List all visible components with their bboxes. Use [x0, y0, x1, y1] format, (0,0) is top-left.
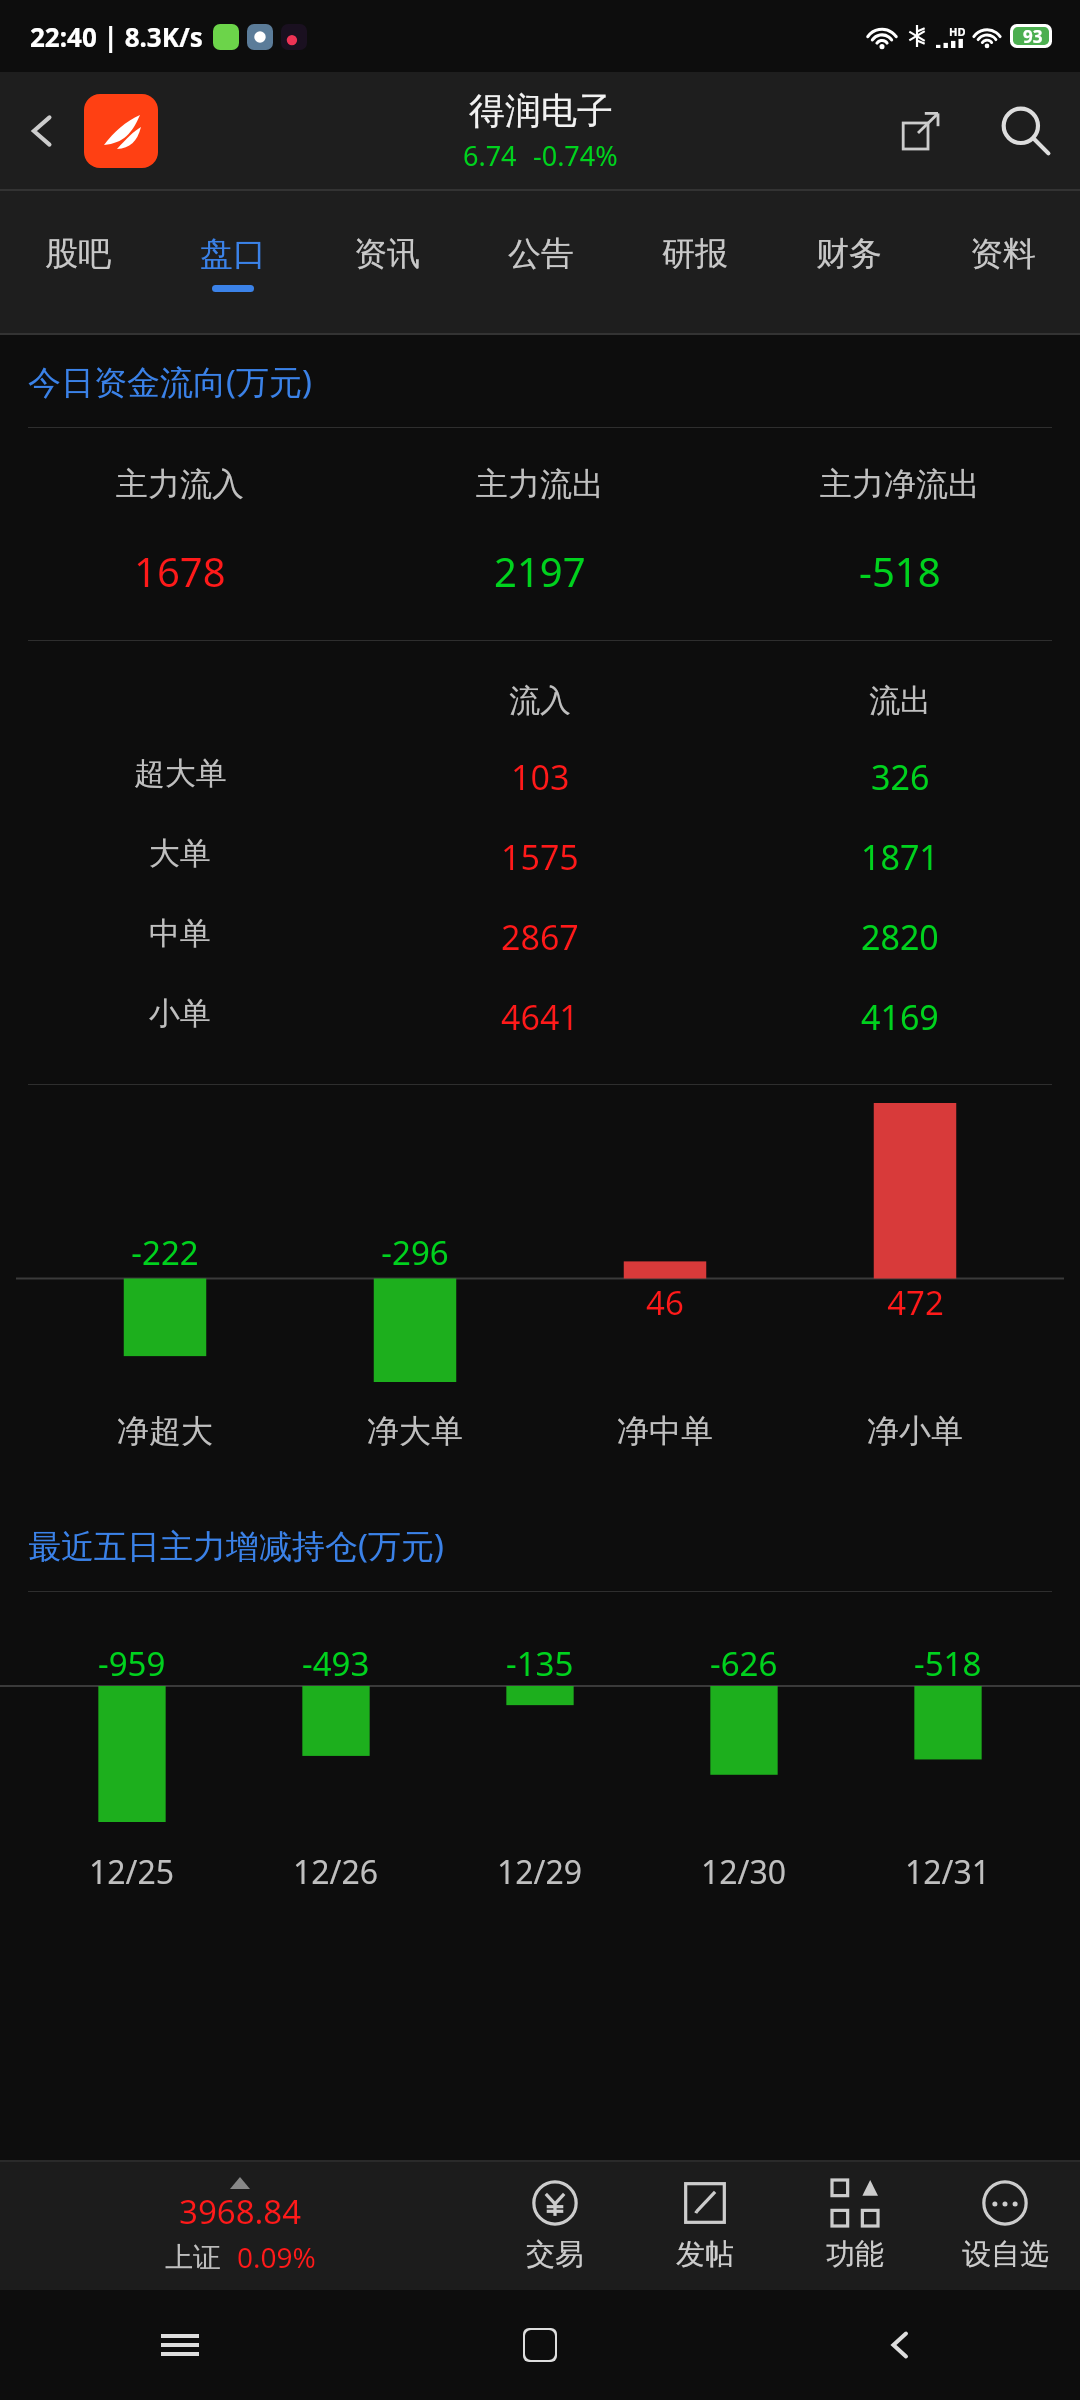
button[interactable]: 盘口	[155, 190, 310, 335]
staticText: 326	[871, 754, 930, 800]
button[interactable]: 研报	[618, 190, 772, 335]
staticText: 472	[887, 1280, 944, 1325]
button[interactable]: Share	[870, 81, 970, 181]
staticText: 超大单	[134, 754, 227, 793]
button[interactable]: 资料	[926, 190, 1080, 335]
staticText: 财务	[816, 233, 882, 275]
staticText: 公告	[508, 233, 574, 275]
staticText: 1575	[501, 834, 579, 880]
staticText: 功能	[826, 2236, 884, 2273]
staticText: 103	[511, 754, 570, 800]
staticText: -518	[859, 544, 941, 598]
staticText: -959	[98, 1641, 166, 1686]
staticText: 1678	[134, 544, 226, 598]
button[interactable]: 3968.84	[0, 2162, 480, 2290]
staticText: 资料	[970, 233, 1036, 275]
staticText: 得润电子	[469, 88, 613, 133]
button[interactable]: App logo	[84, 94, 158, 168]
staticText: 12/31	[905, 1850, 991, 1894]
staticText: 主力流入	[116, 464, 244, 504]
staticText: 最近五日主力增减持仓(万元)	[28, 1523, 444, 1568]
staticText: HD	[949, 24, 966, 39]
staticText: 1871	[861, 834, 939, 880]
button[interactable]: 财务	[772, 190, 926, 335]
staticText: 流入	[509, 681, 571, 720]
staticText: 净小单	[867, 1411, 963, 1451]
staticText: 主力流出	[476, 464, 604, 504]
staticText: 2867	[501, 914, 579, 960]
button[interactable]: 资讯	[310, 190, 464, 335]
staticText: 4169	[861, 994, 939, 1040]
staticText: 研报	[662, 233, 728, 275]
button[interactable]: 公告	[464, 190, 618, 335]
staticText: 净大单	[367, 1411, 463, 1451]
staticText: 12/30	[701, 1850, 787, 1894]
staticText: 12/29	[497, 1850, 583, 1894]
button[interactable]: Back	[720, 2290, 1080, 2400]
staticText: 6.74	[463, 137, 517, 174]
staticText: 设自选	[962, 2236, 1049, 2273]
button[interactable]: Search	[970, 76, 1080, 186]
staticText: 12/26	[293, 1850, 379, 1894]
staticText: 股吧	[45, 233, 111, 275]
staticText: 小单	[149, 994, 211, 1033]
staticText: 93	[1023, 25, 1043, 48]
button[interactable]: 交易	[480, 2162, 630, 2290]
button[interactable]: 设自选	[930, 2162, 1080, 2290]
button[interactable]: 功能	[780, 2162, 930, 2290]
staticText: 2197	[494, 544, 586, 598]
staticText: 46	[646, 1280, 684, 1325]
staticText: 主力净流出	[820, 464, 980, 504]
staticText: 0.09%	[237, 2238, 316, 2276]
staticText: 12/25	[89, 1850, 175, 1894]
staticText: -135	[506, 1641, 574, 1686]
staticText: 净超大	[117, 1411, 213, 1451]
staticText: 今日资金流向(万元)	[28, 359, 312, 404]
staticText: -493	[302, 1641, 370, 1686]
button[interactable]: Home	[360, 2290, 720, 2400]
staticText: 3968.84	[179, 2189, 302, 2234]
staticText: 交易	[526, 2236, 584, 2273]
staticText: -222	[131, 1230, 199, 1275]
button[interactable]: Back	[0, 89, 84, 173]
staticText: 资讯	[354, 233, 420, 275]
staticText: 发帖	[676, 2236, 734, 2273]
button[interactable]: 发帖	[630, 2162, 780, 2290]
staticText: -296	[381, 1230, 449, 1275]
staticText: 上证	[165, 2240, 221, 2275]
staticText: 净中单	[617, 1411, 713, 1451]
staticText: 大单	[149, 834, 211, 873]
staticText: 流出	[869, 681, 931, 720]
staticText: 盘口	[200, 233, 266, 275]
button[interactable]: 股吧	[0, 190, 155, 335]
staticText: 22:40 | 8.3K/s	[30, 19, 203, 54]
staticText: -0.74%	[533, 137, 618, 174]
staticText: -626	[710, 1641, 778, 1686]
button[interactable]: Recents	[0, 2290, 360, 2400]
staticText: 2820	[861, 914, 939, 960]
staticText: 中单	[149, 914, 211, 953]
staticText: -518	[914, 1641, 982, 1686]
staticText: 4641	[501, 994, 579, 1040]
